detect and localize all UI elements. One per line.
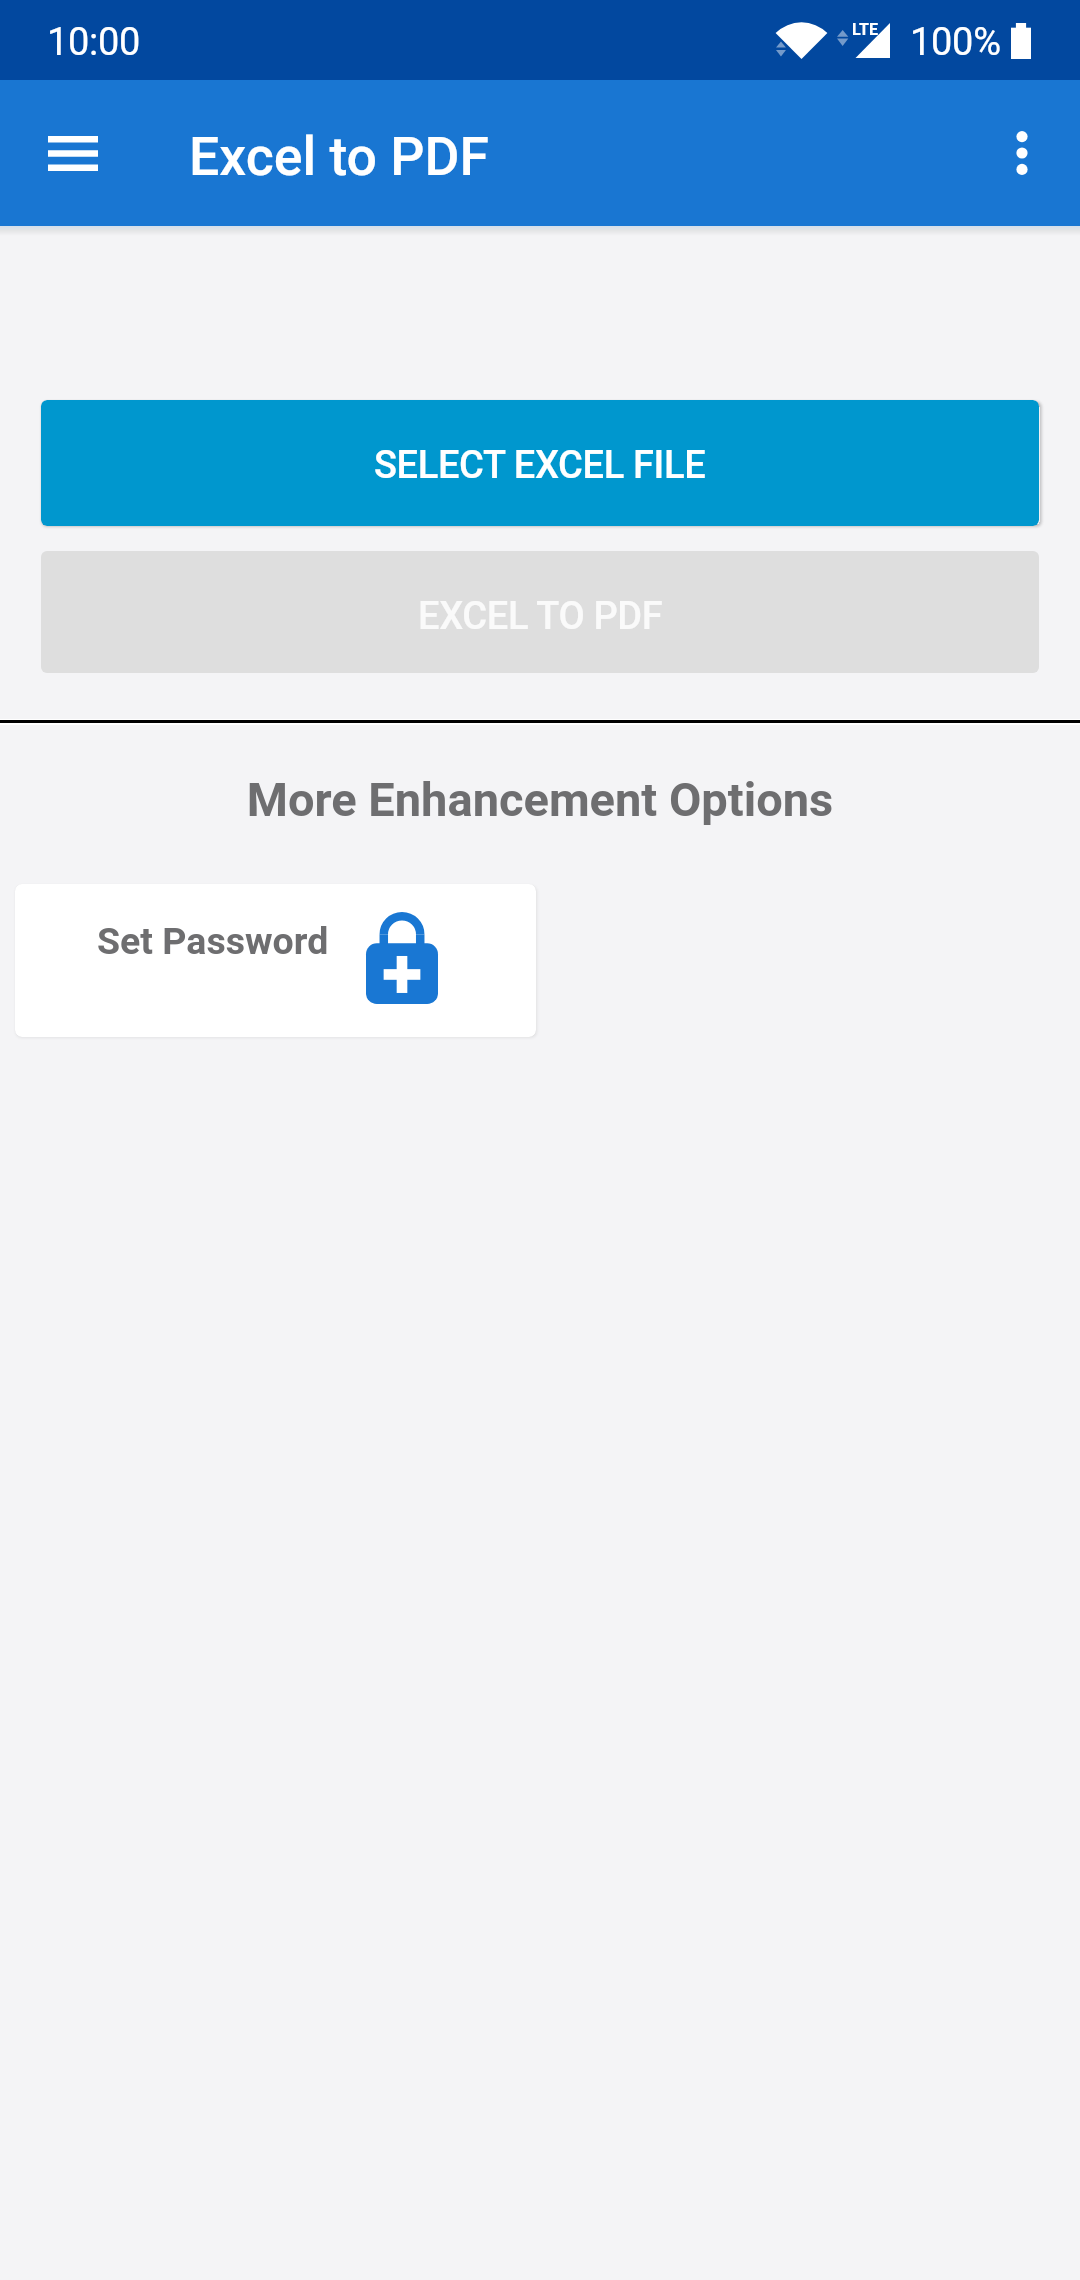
button[interactable]: EXCEL TO PDF [41,551,1039,673]
staticText: Excel to PDF [189,125,489,188]
button[interactable]: Set Password [15,884,536,1037]
button[interactable]: More options [967,98,1077,208]
staticText: More Enhancement Options [0,772,1080,827]
staticText: LTE [852,20,878,39]
staticText: Set Password [97,919,329,963]
staticText: SELECT EXCEL FILE [374,443,706,488]
staticText: 100% [910,20,1001,65]
staticText: 10:00 [47,20,141,65]
button[interactable]: Open navigation menu [18,98,128,208]
staticText: EXCEL TO PDF [418,594,663,639]
button[interactable]: SELECT EXCEL FILE [41,400,1039,526]
